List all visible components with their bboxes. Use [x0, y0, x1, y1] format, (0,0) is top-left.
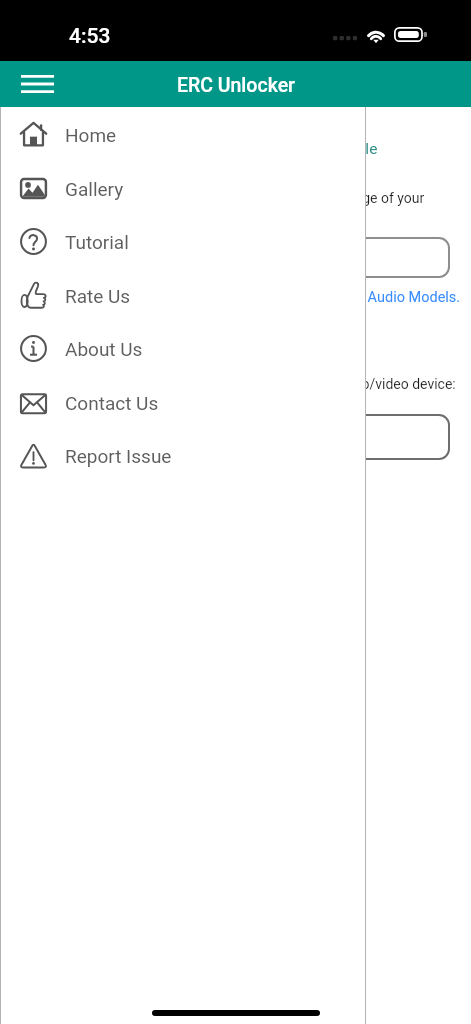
staticText: Report Issue — [65, 445, 172, 467]
staticText: Click here for Audio Models. — [279, 289, 461, 306]
staticText: Gallery — [65, 178, 124, 200]
staticText: ERC Unlocker — [177, 74, 295, 97]
button[interactable]: Rate Us — [0, 269, 366, 322]
button[interactable]: Open navigation drawer — [14, 61, 60, 107]
staticText: Rate Us — [65, 285, 131, 307]
staticText: Enter serial no. of your audio/video dev… — [192, 376, 456, 392]
staticText: Home — [65, 124, 117, 146]
staticText: Contact Us — [65, 392, 159, 414]
button[interactable]: Tutorial — [0, 215, 366, 268]
staticText: Please enter the model / package of your — [169, 190, 425, 206]
button[interactable]: About Us — [0, 322, 366, 375]
staticText: Make sure your phone is in sample — [139, 140, 378, 158]
button[interactable]: Home — [0, 108, 366, 161]
button[interactable]: Report Issue — [0, 429, 366, 482]
staticText: About Us — [65, 338, 143, 360]
staticText: Tutorial — [65, 231, 129, 253]
button[interactable]: Gallery — [0, 162, 366, 215]
button[interactable]: Contact Us — [0, 376, 366, 429]
staticText: 4:53 — [69, 24, 111, 49]
